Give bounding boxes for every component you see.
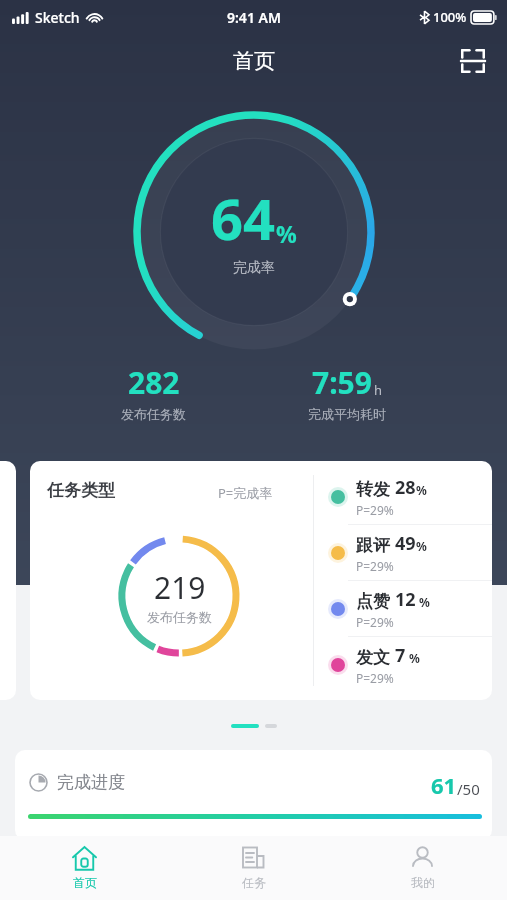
staticText: /50 (457, 779, 480, 799)
staticText: 12 (395, 587, 416, 612)
button[interactable]: 完成进度 (15, 750, 492, 840)
staticText: % (416, 538, 427, 554)
staticText: 9:41 AM (227, 8, 281, 27)
staticText: 7:59 (312, 362, 372, 403)
button[interactable]: 任务 (169, 836, 338, 900)
staticText: 发布任务数 (147, 609, 212, 625)
staticText: 首页 (73, 875, 97, 890)
staticText: P=29% (356, 558, 394, 574)
button[interactable]: Scan QR code (453, 41, 493, 81)
staticText: % (416, 482, 427, 498)
staticText: % (276, 218, 297, 249)
staticText: % (406, 650, 420, 666)
staticText: h (374, 381, 383, 399)
button[interactable]: 任务类型 (30, 461, 492, 700)
staticText: 61 (431, 770, 457, 800)
staticText: Sketch (35, 8, 80, 27)
staticText: 49 (395, 531, 416, 556)
button[interactable]: 首页 (0, 836, 169, 900)
staticText: 完成进度 (57, 772, 125, 793)
staticText: 7 (395, 643, 406, 668)
staticText: P=29% (356, 614, 394, 630)
staticText: % (416, 594, 430, 610)
staticText: P=完成率 (218, 484, 273, 502)
staticText: 我的 (411, 875, 435, 890)
staticText: 28 (395, 475, 416, 500)
button[interactable]: 点赞 (328, 581, 492, 636)
staticText: 点赞 (356, 591, 390, 612)
staticText: 转发 (356, 479, 390, 500)
staticText: 完成率 (233, 259, 275, 277)
button[interactable]: 发文 (328, 637, 492, 692)
staticText: 282 (128, 362, 180, 403)
staticText: 219 (154, 567, 206, 608)
staticText: 100% (433, 8, 467, 26)
button[interactable]: 转发 (328, 469, 492, 524)
staticText: 任务类型 (47, 480, 115, 501)
staticText: 发布任务数 (121, 406, 186, 422)
staticText: P=29% (356, 502, 394, 518)
staticText: 首页 (233, 48, 275, 74)
staticText: 发文 (356, 647, 390, 668)
staticText: 跟评 (356, 535, 390, 556)
button[interactable]: 跟评 (328, 525, 492, 580)
staticText: 任务 (242, 875, 266, 890)
button[interactable]: 我的 (338, 836, 507, 900)
staticText: P=29% (356, 670, 394, 686)
staticText: 完成平均耗时 (308, 406, 386, 422)
staticText: 64 (211, 180, 276, 256)
